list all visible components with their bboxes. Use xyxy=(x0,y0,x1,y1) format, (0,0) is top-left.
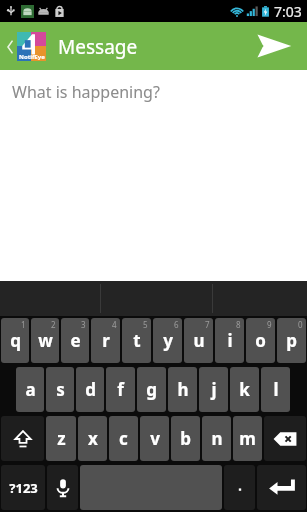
button[interactable]: a xyxy=(16,367,44,412)
button[interactable]: s xyxy=(46,367,74,412)
staticText: o xyxy=(255,329,266,352)
staticText: a xyxy=(25,378,36,401)
staticText: NotifEye xyxy=(19,53,45,61)
staticText: f xyxy=(117,378,124,401)
staticText: ?123 xyxy=(9,479,38,497)
staticText: t xyxy=(133,329,141,352)
button[interactable]: z xyxy=(46,416,76,461)
staticText: 9 xyxy=(267,319,272,330)
staticText: x xyxy=(88,427,98,450)
staticText: 2 xyxy=(51,319,56,330)
button[interactable]: g xyxy=(137,367,166,412)
staticText: 6 xyxy=(174,319,179,330)
button[interactable]: u xyxy=(184,318,213,363)
button[interactable]: Backspace xyxy=(264,416,306,461)
staticText: z xyxy=(57,427,66,450)
staticText: b xyxy=(180,427,191,450)
staticText: l xyxy=(273,378,279,401)
staticText: u xyxy=(193,329,205,352)
staticText: p xyxy=(286,329,297,352)
staticText: d xyxy=(85,378,96,401)
button[interactable]: v xyxy=(140,416,169,461)
staticText: 1 xyxy=(21,319,26,330)
button[interactable]: Send xyxy=(251,23,297,69)
button[interactable]: ?123 xyxy=(1,465,45,510)
button[interactable]: x xyxy=(78,416,107,461)
button[interactable]: q xyxy=(1,318,29,363)
staticText: c xyxy=(119,427,128,450)
staticText: n xyxy=(211,427,223,450)
staticText: Message xyxy=(58,34,138,60)
staticText: 3 xyxy=(81,319,86,330)
staticText: r xyxy=(102,329,110,352)
staticText: 0 xyxy=(298,319,303,330)
staticText: 7 xyxy=(205,319,210,330)
staticText: q xyxy=(10,329,21,352)
button[interactable]: e xyxy=(61,318,89,363)
staticText: h xyxy=(177,378,189,401)
button[interactable]: b xyxy=(171,416,200,461)
staticText: w xyxy=(38,329,53,352)
staticText: 5 xyxy=(143,319,148,330)
staticText: e xyxy=(70,329,81,352)
button[interactable]: r xyxy=(91,318,120,363)
staticText: 7:03 xyxy=(274,2,302,21)
button[interactable]: o xyxy=(246,318,275,363)
staticText: 4 xyxy=(112,319,117,330)
staticText: i xyxy=(227,329,233,352)
staticText: g xyxy=(146,378,157,401)
button[interactable]: f xyxy=(106,367,135,412)
button[interactable]: Enter xyxy=(257,465,306,510)
button[interactable]: Shift xyxy=(1,416,44,461)
button[interactable]: y xyxy=(153,318,182,363)
staticText: 8 xyxy=(236,319,241,330)
button[interactable]: l xyxy=(261,367,290,412)
staticText: v xyxy=(150,427,160,450)
button[interactable]: p xyxy=(277,318,306,363)
button[interactable]: What is happening? xyxy=(0,70,307,281)
button[interactable]: Back xyxy=(0,26,48,67)
button[interactable]: c xyxy=(109,416,138,461)
button[interactable]: Voice input xyxy=(47,465,78,510)
staticText: What is happening? xyxy=(12,81,160,103)
staticText: k xyxy=(239,378,250,401)
staticText: s xyxy=(56,378,65,401)
button[interactable]: h xyxy=(168,367,197,412)
button[interactable]: n xyxy=(202,416,231,461)
button[interactable]: i xyxy=(215,318,244,363)
button[interactable]: m xyxy=(233,416,262,461)
staticText: y xyxy=(163,329,173,352)
button[interactable]: j xyxy=(199,367,228,412)
button[interactable]: w xyxy=(31,318,59,363)
button[interactable]: d xyxy=(76,367,104,412)
button[interactable]: t xyxy=(122,318,151,363)
staticText: m xyxy=(239,427,256,450)
button[interactable]: Period xyxy=(224,465,255,510)
staticText: j xyxy=(211,378,217,401)
button[interactable]: k xyxy=(230,367,259,412)
